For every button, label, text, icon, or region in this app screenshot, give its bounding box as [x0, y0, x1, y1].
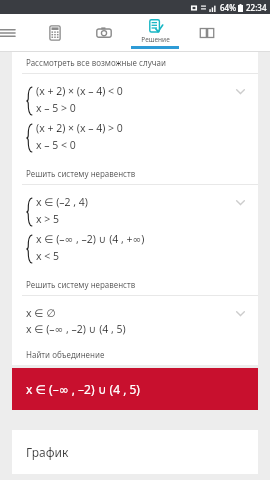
staticText: График — [26, 444, 69, 460]
button[interactable]: Решить систему неравенств — [12, 274, 258, 295]
button[interactable]: (x + 2) × (x – 4) < 0 — [12, 74, 258, 163]
button[interactable]: График — [12, 430, 258, 474]
staticText: x ∈ (–∞ , –2) ∪ (4 , 5) — [26, 381, 140, 397]
staticText: x ∈ (–∞ , –2) ∪ (4 , +∞) — [36, 232, 145, 246]
button[interactable]: Camera — [79, 14, 128, 52]
staticText: x ∈ (–2 , 4) — [36, 195, 88, 209]
button[interactable]: Найти объединение — [12, 344, 258, 365]
button[interactable]: Решение — [128, 14, 182, 52]
button[interactable]: Рассмотреть все возможные случаи — [12, 52, 258, 73]
staticText: Решить систему неравенств — [26, 279, 136, 290]
button[interactable]: x ∈ (–2 , 4) — [12, 185, 258, 274]
button[interactable]: Book — [182, 14, 231, 52]
staticText: 64% — [220, 2, 236, 13]
staticText: x > 5 — [36, 212, 60, 226]
staticText: x – 5 > 0 — [36, 101, 76, 115]
button[interactable]: Menu — [0, 14, 30, 52]
staticText: x ∈ ∅ — [26, 306, 56, 320]
other: Expand — [235, 308, 246, 319]
staticText: (x + 2) × (x – 4) > 0 — [36, 121, 123, 135]
other: Expand — [235, 86, 246, 97]
staticText: 22:34 — [246, 2, 267, 13]
button[interactable]: x ∈ ∅ — [12, 296, 258, 344]
staticText: Рассмотреть все возможные случаи — [26, 57, 166, 68]
other: Expand — [235, 197, 246, 208]
staticText: x < 5 — [36, 249, 60, 263]
staticText: Решение — [141, 35, 170, 44]
staticText: Решить систему неравенств — [26, 168, 136, 179]
button[interactable]: x ∈ (–∞ , –2) ∪ (4 , 5) — [12, 368, 258, 410]
staticText: x – 5 < 0 — [36, 138, 76, 152]
button[interactable]: Решить систему неравенств — [12, 163, 258, 184]
button[interactable]: Calculator — [30, 14, 79, 52]
staticText: (x + 2) × (x – 4) < 0 — [36, 84, 123, 98]
staticText: x ∈ (–∞ , –2) ∪ (4 , 5) — [26, 322, 126, 336]
staticText: Найти объединение — [26, 349, 105, 360]
